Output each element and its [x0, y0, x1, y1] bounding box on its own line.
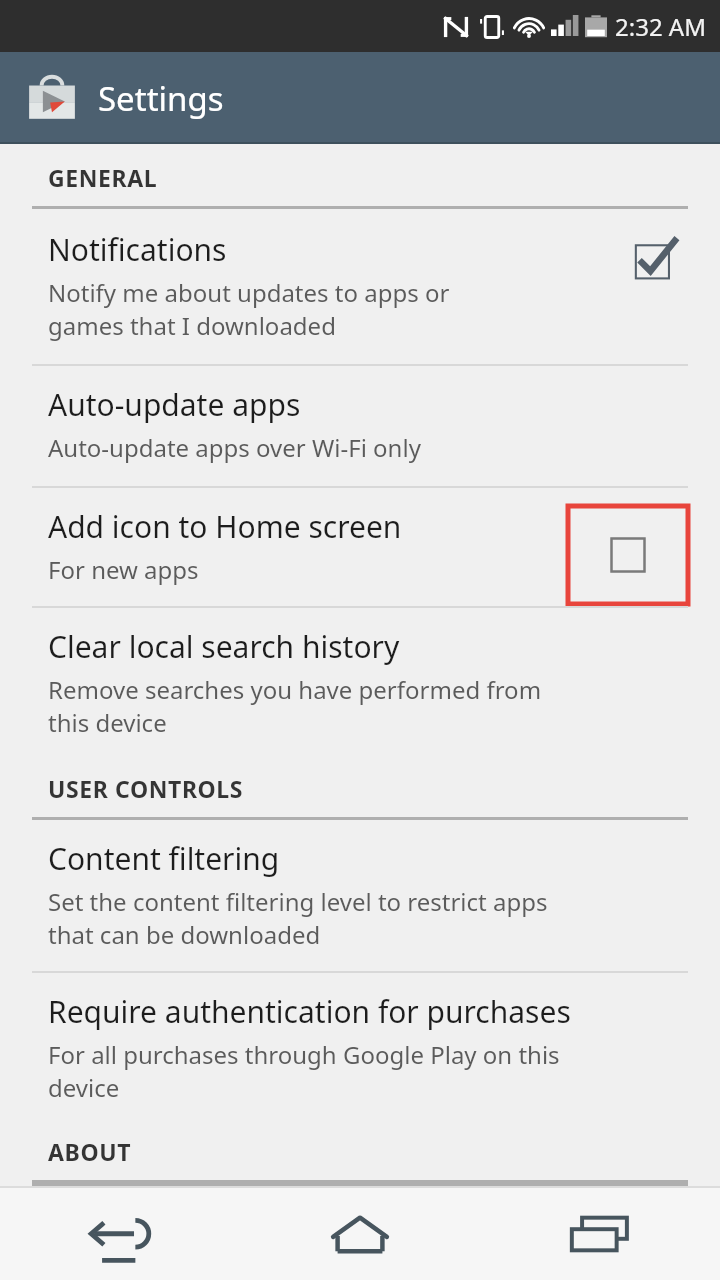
button[interactable]: Clear local search history [0, 608, 720, 757]
staticText: Set the content filtering level to restr… [48, 885, 548, 951]
staticText: Clear local search history [48, 626, 400, 667]
staticText: Add icon to Home screen [48, 506, 402, 547]
staticText: USER CONTROLS [48, 773, 244, 804]
staticText: Settings [98, 76, 224, 121]
button[interactable]: Content filtering [0, 820, 720, 971]
button[interactable]: Notifications [0, 209, 720, 364]
staticText: Content filtering [48, 838, 280, 879]
staticText: Require authentication for purchases [48, 991, 571, 1032]
button[interactable]: Back [0, 1188, 240, 1280]
button[interactable]: Add icon to Home screen [0, 488, 720, 606]
staticText: Notifications [48, 229, 227, 270]
staticText: Auto-update apps over Wi-Fi only [48, 431, 421, 464]
button[interactable]: Add icon to Home screen toggle [568, 506, 688, 604]
staticText: Auto-update apps [48, 384, 301, 425]
staticText: For all purchases through Google Play on… [48, 1038, 560, 1104]
staticText: GENERAL [48, 162, 158, 193]
button[interactable]: Auto-update apps [0, 366, 720, 486]
staticText: Remove searches you have performed from … [48, 673, 542, 739]
staticText: ABOUT [48, 1136, 132, 1167]
button[interactable]: Require authentication for purchases [0, 973, 720, 1122]
button[interactable]: Home [240, 1188, 480, 1280]
button[interactable]: Notifications toggle [626, 229, 688, 291]
staticText: Notify me about updates to apps or games… [48, 276, 450, 342]
staticText: 2:32 AM [615, 10, 706, 43]
staticText: For new apps [48, 553, 199, 586]
button[interactable]: Recent apps [480, 1188, 720, 1280]
